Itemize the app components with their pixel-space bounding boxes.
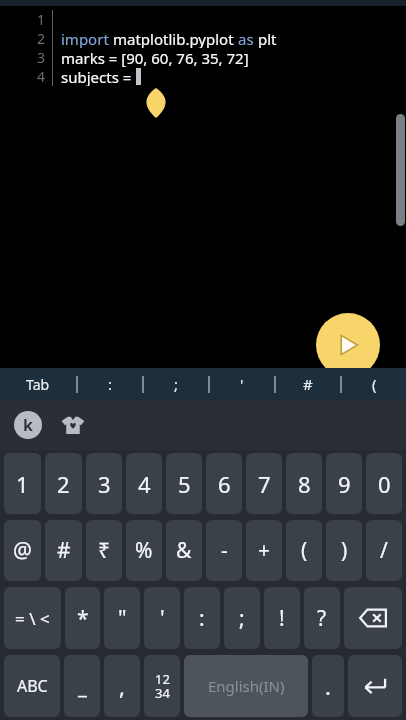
button[interactable]: # (45, 520, 82, 581)
staticText: " (118, 604, 127, 633)
staticText: English(IN) (208, 676, 285, 696)
staticText: / (380, 536, 388, 565)
staticText: , (119, 671, 125, 701)
button[interactable]: Enter (348, 655, 402, 717)
button[interactable]: ? (304, 587, 340, 649)
button[interactable]: / (366, 520, 402, 581)
staticText: ) (341, 536, 348, 565)
staticText: ! (279, 604, 285, 633)
staticText: @ (13, 536, 32, 565)
button[interactable]: : (78, 368, 142, 400)
button[interactable]: 0 (366, 453, 402, 514)
staticText: + (258, 536, 271, 565)
button[interactable]: . (312, 655, 344, 717)
staticText: # (57, 536, 71, 565)
staticText: 2 (37, 29, 46, 48)
staticText: ; (239, 604, 245, 633)
button[interactable]: 4 (126, 453, 162, 514)
button[interactable]: ) (326, 520, 362, 581)
staticText: : (199, 604, 205, 633)
button[interactable]: , (104, 655, 140, 717)
staticText: . (325, 671, 331, 701)
staticText: 1 (37, 10, 46, 29)
staticText: ; (174, 374, 179, 394)
staticText: matplotlib.pyplot (113, 29, 238, 48)
staticText: = \ < (15, 607, 50, 630)
button[interactable]: ABC (4, 655, 60, 717)
staticText: # (303, 374, 313, 394)
staticText: k (23, 414, 33, 436)
staticText: 3 (98, 469, 111, 499)
button[interactable]: Backspace (344, 587, 402, 649)
button[interactable]: * (65, 587, 100, 649)
staticText: ( (301, 536, 308, 565)
staticText: _ (78, 673, 87, 700)
staticText: 3 (37, 48, 46, 67)
staticText: plt (258, 29, 277, 48)
staticText: - (221, 536, 228, 565)
button[interactable]: Keyboard settings (14, 411, 42, 439)
button[interactable]: - (206, 520, 242, 581)
button[interactable]: 9 (326, 453, 362, 514)
button[interactable]: % (126, 520, 162, 581)
staticText: 12 34 (155, 670, 170, 702)
button[interactable]: = \ < (4, 587, 61, 649)
staticText: import (61, 29, 113, 48)
staticText: 1 (16, 469, 29, 499)
staticText: ' (240, 374, 244, 394)
button[interactable]: _ (64, 655, 100, 717)
staticText: ABC (17, 675, 48, 697)
button[interactable]: # (276, 368, 340, 400)
staticText: 9 (338, 469, 351, 499)
button[interactable]: @ (4, 520, 41, 581)
button[interactable]: Run (316, 313, 380, 377)
staticText: ( (372, 374, 377, 394)
button[interactable]: + (246, 520, 282, 581)
staticText: subjects = (61, 67, 136, 86)
staticText: * (77, 604, 89, 633)
button[interactable]: 2 (45, 453, 82, 514)
staticText: 4 (37, 67, 46, 86)
staticText: % (135, 536, 153, 565)
button[interactable]: & (166, 520, 202, 581)
button[interactable]: 8 (286, 453, 322, 514)
button[interactable]: ( (342, 368, 406, 400)
staticText: 6 (218, 469, 231, 499)
staticText: ? (317, 604, 327, 633)
button[interactable]: 6 (206, 453, 242, 514)
button[interactable]: ( (286, 520, 322, 581)
staticText: marks = [90, 60, 76, 35, 72] (61, 48, 249, 67)
button[interactable]: ' (144, 587, 180, 649)
button[interactable]: 12 34 (144, 655, 180, 717)
staticText: 0 (378, 469, 391, 499)
staticText: 2 (57, 469, 70, 499)
button[interactable]: ₹ (86, 520, 122, 581)
button[interactable]: Themes (58, 410, 88, 440)
button[interactable]: ; (224, 587, 260, 649)
staticText: as (238, 29, 258, 48)
button[interactable]: " (104, 587, 140, 649)
button[interactable]: 5 (166, 453, 202, 514)
button[interactable]: 7 (246, 453, 282, 514)
button[interactable]: 1 (4, 453, 41, 514)
staticText: 7 (258, 469, 271, 499)
button[interactable]: ; (144, 368, 208, 400)
button[interactable]: : (184, 587, 220, 649)
staticText: ' (160, 604, 165, 633)
staticText: 4 (138, 469, 151, 499)
staticText: ₹ (98, 536, 111, 565)
staticText: 8 (298, 469, 311, 499)
button[interactable]: English(IN) (184, 655, 308, 717)
staticText: & (176, 536, 192, 565)
staticText: 5 (178, 469, 191, 499)
button[interactable]: 3 (86, 453, 122, 514)
button[interactable]: ' (210, 368, 274, 400)
staticText: : (108, 374, 113, 394)
button[interactable]: ! (264, 587, 300, 649)
button[interactable]: Tab (0, 368, 76, 400)
staticText: Tab (26, 375, 50, 394)
